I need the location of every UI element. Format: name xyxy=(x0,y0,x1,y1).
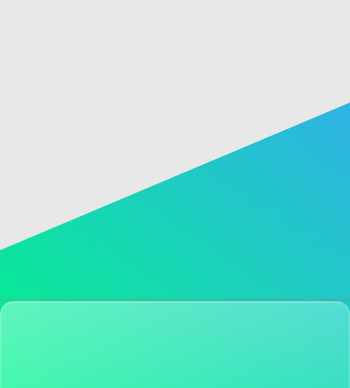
other: Decorative gradient banner xyxy=(0,0,350,388)
button[interactable]: Details sheet xyxy=(0,301,350,388)
